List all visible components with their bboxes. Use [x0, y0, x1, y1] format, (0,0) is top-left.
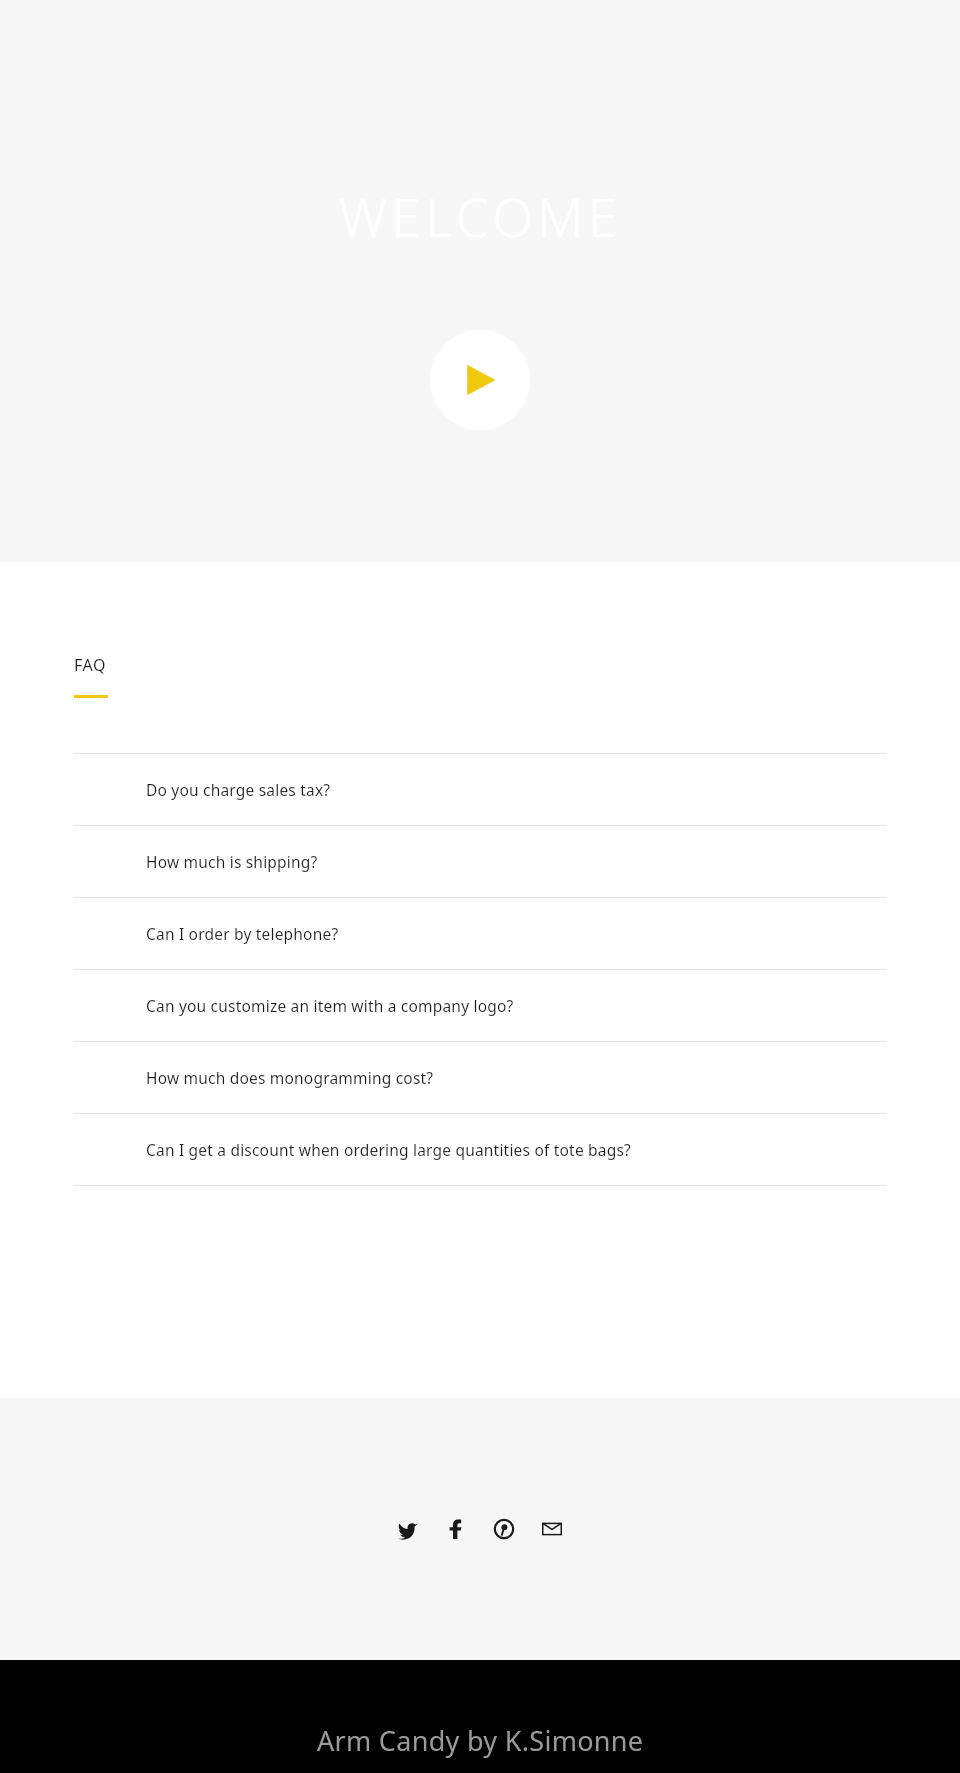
button[interactable]: Pinterest: [487, 1512, 521, 1546]
button[interactable]: How much does monogramming cost?: [73, 1042, 887, 1113]
staticText: How much is shipping?: [146, 851, 318, 872]
button[interactable]: Arm Candy by K.Simonne: [317, 1722, 644, 1759]
button[interactable]: Can I order by telephone?: [73, 898, 887, 969]
button[interactable]: Can I get a discount when ordering large…: [73, 1114, 887, 1185]
staticText: Can you customize an item with a company…: [146, 995, 514, 1016]
button[interactable]: Twitter: [391, 1512, 425, 1546]
button[interactable]: Email: [535, 1512, 569, 1546]
staticText: How much does monogramming cost?: [146, 1067, 434, 1088]
button[interactable]: Can you customize an item with a company…: [73, 970, 887, 1041]
staticText: Arm Candy by K.Simonne: [317, 1722, 644, 1759]
staticText: Can I order by telephone?: [146, 923, 339, 944]
button[interactable]: Do you charge sales tax?: [73, 754, 887, 825]
button[interactable]: Facebook: [439, 1512, 473, 1546]
button[interactable]: How much is shipping?: [73, 826, 887, 897]
staticText: FAQ: [74, 654, 107, 676]
button[interactable]: Play video: [430, 330, 530, 430]
staticText: Do you charge sales tax?: [146, 779, 331, 800]
staticText: Can I get a discount when ordering large…: [146, 1139, 631, 1160]
